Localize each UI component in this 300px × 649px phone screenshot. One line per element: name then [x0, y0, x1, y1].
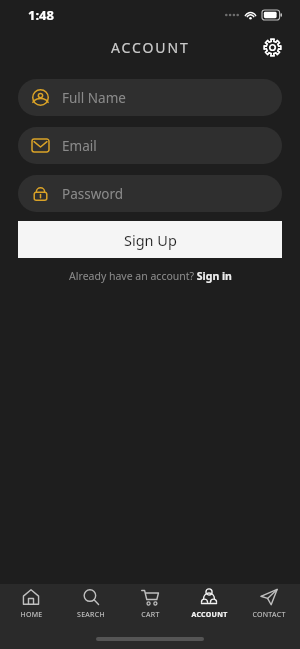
staticText: Sign Up: [124, 230, 177, 250]
staticText: Email: [62, 137, 97, 155]
button[interactable]: Sign Up: [18, 221, 282, 258]
button[interactable]: SEARCH: [63, 588, 119, 629]
button[interactable]: Password: [18, 175, 282, 212]
button[interactable]: Already have an account? Sign in: [69, 269, 232, 283]
staticText: ACCOUNT: [111, 38, 190, 57]
staticText: CART: [141, 610, 160, 620]
staticText: SEARCH: [77, 610, 105, 620]
button[interactable]: Settings: [252, 30, 292, 64]
button[interactable]: Full Name: [18, 79, 282, 116]
button[interactable]: HOME: [3, 588, 59, 629]
staticText: 1:48: [28, 6, 54, 24]
staticText: Password: [62, 185, 124, 203]
button[interactable]: ACCOUNT: [181, 588, 237, 629]
staticText: CONTACT: [252, 610, 286, 620]
staticText: Full Name: [62, 89, 126, 107]
button[interactable]: Email: [18, 127, 282, 164]
button[interactable]: CART: [122, 588, 178, 629]
staticText: ACCOUNT: [191, 610, 228, 620]
staticText: HOME: [20, 610, 43, 620]
button[interactable]: CONTACT: [241, 588, 297, 629]
